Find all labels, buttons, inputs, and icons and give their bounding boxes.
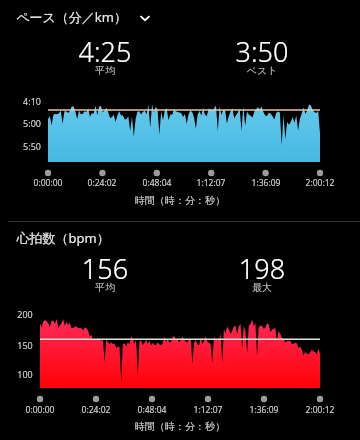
staticText: 1:36:09 bbox=[240, 404, 288, 416]
staticText: 1:12:07 bbox=[187, 177, 235, 189]
staticText: 0:00:00 bbox=[16, 404, 64, 416]
staticText: 3:50 bbox=[219, 33, 305, 65]
staticText: 198 bbox=[219, 250, 305, 282]
staticText: 最大 bbox=[219, 281, 305, 294]
staticText: 100 bbox=[12, 368, 38, 380]
staticText: 平均 bbox=[62, 64, 148, 77]
staticText: 2:00:12 bbox=[296, 404, 344, 416]
staticText: 心拍数（bpm） bbox=[16, 229, 110, 247]
staticText: ベスト bbox=[219, 64, 305, 77]
staticText: 0:24:02 bbox=[72, 404, 120, 416]
staticText: ペース（分／km） bbox=[16, 8, 127, 26]
staticText: 1:36:09 bbox=[242, 177, 290, 189]
staticText: 1:12:07 bbox=[184, 404, 232, 416]
other: Expand pace options bbox=[138, 13, 152, 23]
staticText: 2:00:12 bbox=[296, 177, 344, 189]
button[interactable]: 心拍数（bpm） bbox=[0, 222, 360, 440]
staticText: 時間（時：分：秒） bbox=[0, 194, 360, 207]
staticText: 4:25 bbox=[62, 33, 148, 65]
staticText: 0:48:04 bbox=[133, 177, 181, 189]
staticText: 156 bbox=[62, 250, 148, 282]
staticText: 4:10 bbox=[18, 95, 46, 107]
staticText: 0:24:02 bbox=[78, 177, 126, 189]
staticText: 時間（時：分：秒） bbox=[0, 420, 360, 433]
staticText: 0:00:00 bbox=[24, 177, 72, 189]
staticText: 200 bbox=[12, 308, 38, 320]
staticText: 平均 bbox=[62, 281, 148, 294]
staticText: 5:50 bbox=[18, 140, 46, 152]
staticText: 0:48:04 bbox=[128, 404, 176, 416]
button[interactable]: ペース（分／km） bbox=[0, 0, 360, 221]
button[interactable]: 心拍数（bpm） bbox=[16, 229, 110, 247]
staticText: 5:00 bbox=[18, 117, 46, 129]
staticText: 150 bbox=[12, 339, 38, 351]
button[interactable]: ペース（分／km） bbox=[16, 8, 127, 26]
